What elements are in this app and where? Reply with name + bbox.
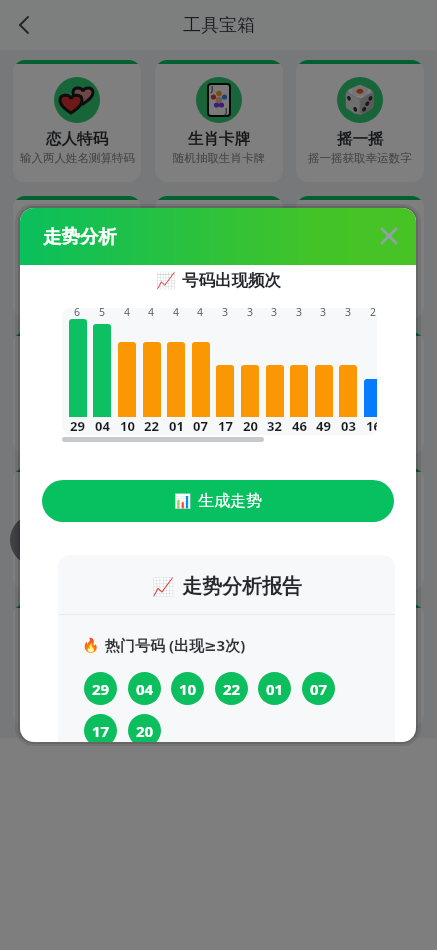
staticText: 20 xyxy=(243,417,258,435)
staticText: 17 xyxy=(218,417,233,435)
staticText: 22 xyxy=(144,417,159,435)
staticText: 03 xyxy=(341,417,356,435)
staticText: 07 xyxy=(310,679,328,699)
button[interactable] xyxy=(155,332,283,454)
staticText: 04 xyxy=(95,417,110,435)
staticText: 20 xyxy=(136,721,154,741)
staticText: 3 xyxy=(320,305,327,319)
staticText: 生肖卡牌 xyxy=(188,129,250,149)
staticText: 5 xyxy=(99,305,106,319)
staticText: 摇一摇 xyxy=(337,129,384,149)
staticText: 32 xyxy=(267,417,282,435)
staticText: 热门号码 (出现≥3次) xyxy=(105,635,246,655)
staticText: 4 xyxy=(173,305,180,319)
staticText: 3 xyxy=(345,305,352,319)
staticText: 工具宝箱 xyxy=(183,14,255,37)
staticText: 生成走势 xyxy=(198,491,262,511)
staticText: 10 xyxy=(120,417,135,435)
staticText: 🔥 xyxy=(82,637,100,653)
staticText: 📈 xyxy=(156,271,176,290)
button[interactable]: 07 xyxy=(302,672,335,705)
button[interactable]: 10 xyxy=(171,672,204,705)
button[interactable]: 29 xyxy=(84,672,117,705)
button[interactable] xyxy=(381,228,397,244)
staticText: 🎲 xyxy=(343,84,377,116)
staticText: 6 xyxy=(74,305,81,319)
button[interactable] xyxy=(13,196,141,318)
button[interactable] xyxy=(13,468,141,590)
staticText: 随机抽取生肖卡牌 xyxy=(173,151,265,165)
button[interactable] xyxy=(296,604,424,726)
button[interactable]: 📊 xyxy=(42,480,394,522)
staticText: 📊 xyxy=(174,493,192,509)
staticText: 📈 xyxy=(152,576,175,597)
button[interactable] xyxy=(155,196,283,318)
staticText: 4 xyxy=(124,305,131,319)
button[interactable] xyxy=(13,604,141,726)
staticText: 走势分析报告 xyxy=(182,574,302,599)
staticText: 3 xyxy=(247,305,254,319)
staticText: 16 xyxy=(366,417,377,435)
button[interactable]: 20 xyxy=(128,714,161,742)
staticText: 3 xyxy=(271,305,278,319)
button[interactable] xyxy=(13,332,141,454)
staticText: 17 xyxy=(92,721,110,741)
button[interactable] xyxy=(155,468,283,590)
button[interactable]: 🎲 xyxy=(296,60,424,182)
button[interactable]: 22 xyxy=(215,672,248,705)
staticText: 10 xyxy=(179,679,197,699)
staticText: 3 xyxy=(222,305,229,319)
staticText: 4 xyxy=(197,305,204,319)
button[interactable]: J xyxy=(155,60,283,182)
staticText: 29 xyxy=(70,417,85,435)
button[interactable]: 01 xyxy=(258,672,291,705)
button[interactable] xyxy=(18,16,30,34)
staticText: 号码出现频次 xyxy=(182,270,281,291)
staticText: J xyxy=(225,106,228,116)
button[interactable] xyxy=(296,332,424,454)
staticText: 04 xyxy=(136,679,154,699)
staticText: 49 xyxy=(316,417,331,435)
button[interactable] xyxy=(296,196,424,318)
staticText: 走势分析 xyxy=(43,225,117,248)
button[interactable] xyxy=(296,468,424,590)
staticText: 恋人特码 xyxy=(46,129,108,149)
staticText: 22 xyxy=(223,679,241,699)
staticText: 46 xyxy=(292,417,307,435)
staticText: 摇一摇获取幸运数字 xyxy=(308,151,412,165)
staticText: 07 xyxy=(193,417,208,435)
staticText: 01 xyxy=(266,679,284,699)
staticText: J xyxy=(211,84,214,94)
button[interactable]: 04 xyxy=(128,672,161,705)
staticText: 4 xyxy=(148,305,155,319)
staticText: 01 xyxy=(169,417,184,435)
button[interactable]: 17 xyxy=(84,714,117,742)
staticText: 29 xyxy=(92,679,110,699)
staticText: 输入两人姓名测算特码 xyxy=(20,151,135,165)
button[interactable]: 恋人特码 xyxy=(13,60,141,182)
button[interactable] xyxy=(155,604,283,726)
staticText: 3 xyxy=(296,305,303,319)
staticText: 2 xyxy=(370,305,377,319)
